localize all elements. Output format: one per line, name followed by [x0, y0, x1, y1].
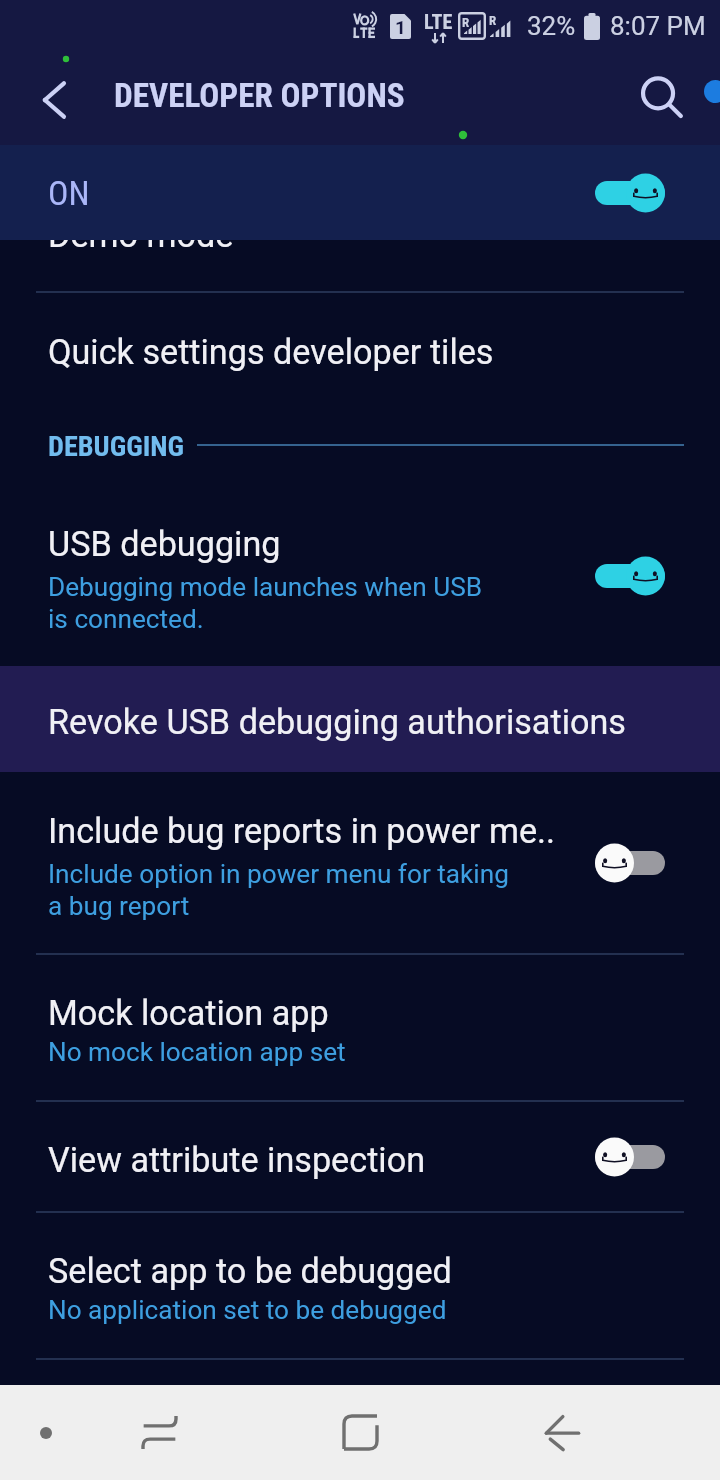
staticText: Select app to be debugged [48, 1251, 452, 1291]
button[interactable]: ON [0, 145, 720, 240]
staticText: USB debugging [48, 524, 281, 564]
staticText: 32% [527, 11, 576, 41]
button[interactable]: Home [260, 1385, 460, 1480]
staticText: DEVELOPER OPTIONS [114, 76, 405, 115]
staticText: R [462, 15, 470, 30]
button[interactable]: Show navigation bar [0, 1385, 92, 1480]
staticText: 8:07 PM [610, 11, 706, 41]
button[interactable]: View attribute inspection [0, 1102, 720, 1211]
staticText: Mock location app [48, 993, 329, 1033]
staticText: R [489, 13, 497, 28]
staticText: No application set to be debugged [48, 1295, 447, 1326]
button[interactable]: Include bug reports in power me.. [0, 772, 720, 953]
staticText: ON [48, 173, 90, 213]
staticText: DEBUGGING [48, 430, 185, 463]
button[interactable]: Quick settings developer tiles [0, 293, 720, 404]
staticText: Include bug reports in power me.. [48, 811, 556, 851]
staticText: Debugging mode launches when USB is conn… [48, 572, 483, 634]
staticText: 1 [395, 16, 406, 38]
button[interactable]: Recent apps [92, 1385, 227, 1480]
button[interactable]: Navigate up [26, 72, 82, 128]
staticText: Include option in power menu for taking … [48, 859, 509, 921]
staticText: LTE [424, 10, 453, 33]
button[interactable]: USB debugging [0, 485, 720, 666]
button[interactable]: Mock location app [0, 955, 720, 1100]
button[interactable]: Revoke USB debugging authorisations [0, 666, 720, 772]
staticText: No mock location app set [48, 1037, 346, 1068]
button[interactable]: Search [634, 71, 690, 127]
staticText: Demo mode [48, 240, 234, 255]
button[interactable]: Back [462, 1385, 662, 1480]
staticText: View attribute inspection [48, 1140, 426, 1180]
staticText: Revoke USB debugging authorisations [48, 702, 626, 742]
button[interactable]: Select app to be debugged [0, 1213, 720, 1358]
staticText: Quick settings developer tiles [48, 332, 494, 372]
